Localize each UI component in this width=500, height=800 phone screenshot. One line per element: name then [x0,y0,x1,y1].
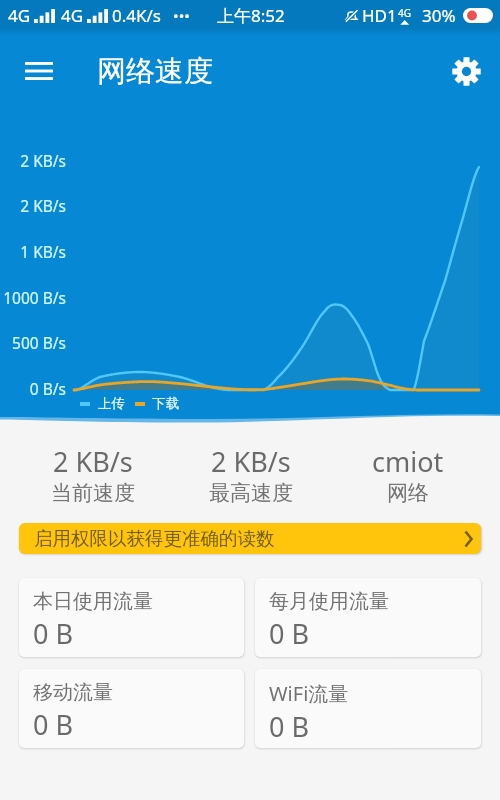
staticText: 下载 [152,395,179,412]
staticText: cmiot [372,443,444,480]
staticText: 上午8:52 [217,4,285,27]
staticText: 2 KB/s [0,150,66,171]
staticText: HD1 [362,4,397,27]
staticText: 2 KB/s [0,195,66,216]
staticText: 0 B [33,706,74,743]
button[interactable]: 2 KB/s [172,443,329,506]
button[interactable]: 2 KB/s [14,443,172,506]
staticText: 网络速度 [97,53,213,90]
button[interactable]: 每月使用流量 [255,578,481,657]
staticText: WiFi流量 [269,680,349,707]
staticText: 0 B [269,615,310,652]
staticText: 启用权限以获得更准确的读数 [34,527,275,550]
button[interactable]: Menu [14,46,64,96]
staticText: ••• [173,6,190,26]
staticText: 0 B [269,708,310,745]
staticText: 4G [8,4,31,27]
button[interactable]: 移动流量 [19,669,244,748]
staticText: 当前速度 [51,480,135,506]
staticText: 2 KB/s [211,443,291,480]
staticText: 4G [398,6,411,20]
staticText: 4G [61,4,84,27]
button[interactable]: Settings [441,46,491,96]
staticText: 上传 [98,395,125,412]
staticText: 2 KB/s [53,443,133,480]
button[interactable]: 启用权限以获得更准确的读数 [19,523,481,554]
staticText: 0.4K/s [112,4,161,27]
staticText: 1000 B/s [0,287,66,308]
staticText: 0 B/s [0,378,66,399]
button[interactable]: WiFi流量 [255,669,481,748]
staticText: 最高速度 [209,480,293,506]
staticText: 30% [422,4,456,27]
button[interactable]: 本日使用流量 [19,578,244,657]
button[interactable]: cmiot [329,443,486,506]
staticText: 1 KB/s [0,241,66,262]
staticText: 本日使用流量 [33,589,153,614]
staticText: 网络 [387,480,429,506]
staticText: 移动流量 [33,680,113,705]
staticText: 每月使用流量 [269,589,389,614]
staticText: 500 B/s [0,332,66,353]
staticText: 0 B [33,615,74,652]
